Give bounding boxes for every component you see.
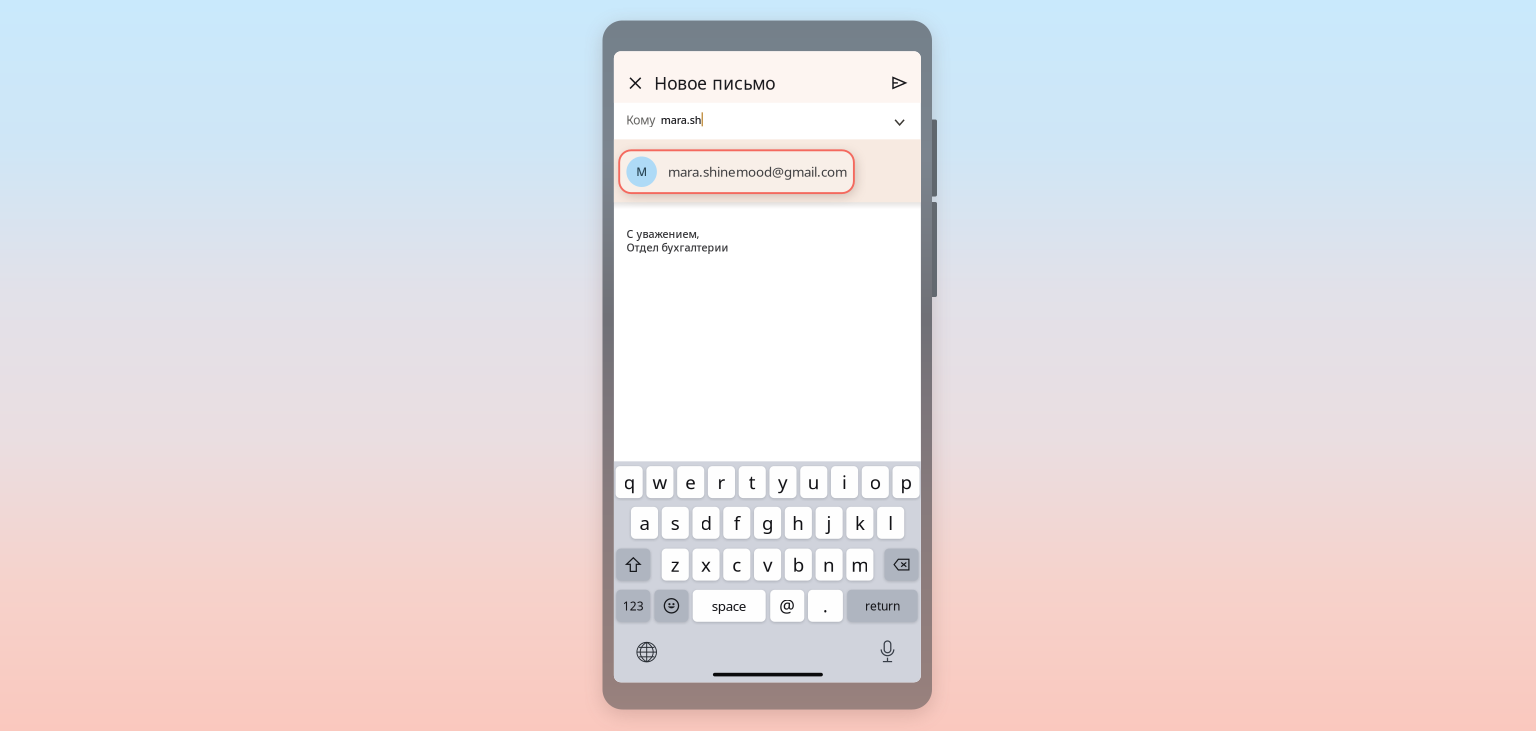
staticText: c bbox=[732, 552, 741, 577]
button[interactable]: b bbox=[785, 549, 812, 581]
button[interactable]: n bbox=[815, 549, 843, 581]
button[interactable]: q bbox=[616, 466, 643, 498]
staticText: k bbox=[855, 510, 865, 535]
staticText: M bbox=[636, 164, 647, 180]
staticText: e bbox=[685, 470, 696, 494]
staticText: Отдел бухгалтерии bbox=[627, 240, 729, 254]
staticText: space bbox=[712, 597, 747, 615]
staticText: h bbox=[792, 510, 804, 535]
button[interactable]: Dictate bbox=[880, 640, 894, 663]
button[interactable]: return bbox=[847, 590, 918, 622]
button[interactable]: a bbox=[631, 507, 658, 539]
staticText: x bbox=[701, 552, 711, 577]
staticText: i bbox=[842, 470, 847, 494]
button[interactable]: l bbox=[877, 507, 904, 539]
staticText: 123 bbox=[623, 598, 644, 614]
staticText: w bbox=[652, 470, 667, 494]
staticText: d bbox=[700, 510, 711, 535]
button[interactable]: i bbox=[831, 466, 858, 498]
staticText: l bbox=[888, 510, 893, 535]
staticText: y bbox=[778, 470, 788, 494]
button[interactable]: m bbox=[846, 549, 873, 581]
staticText: Новое письмо bbox=[654, 72, 775, 95]
button[interactable]: u bbox=[800, 466, 827, 498]
button[interactable]: Send bbox=[892, 77, 906, 89]
button[interactable]: t bbox=[739, 466, 766, 498]
button[interactable]: y bbox=[769, 466, 797, 498]
button[interactable]: Emoji bbox=[654, 590, 688, 622]
staticText: mara.sh bbox=[661, 113, 702, 127]
button[interactable]: j bbox=[816, 507, 843, 539]
staticText: u bbox=[808, 470, 820, 494]
staticText: q bbox=[624, 470, 635, 494]
button[interactable]: e bbox=[677, 466, 704, 498]
button[interactable]: 123 bbox=[616, 590, 650, 622]
staticText: b bbox=[793, 552, 804, 577]
staticText: n bbox=[823, 552, 835, 577]
button[interactable]: d bbox=[692, 507, 720, 539]
button[interactable]: Show more recipients bbox=[894, 119, 905, 126]
button[interactable]: f bbox=[723, 507, 750, 539]
staticText: a bbox=[639, 510, 649, 535]
button[interactable]: x bbox=[692, 549, 720, 581]
button[interactable]: k bbox=[846, 507, 873, 539]
staticText: p bbox=[901, 470, 912, 494]
staticText: С уважением, bbox=[627, 227, 700, 241]
button[interactable]: z bbox=[662, 549, 689, 581]
button[interactable]: Shift bbox=[616, 549, 650, 581]
button[interactable]: Close bbox=[630, 78, 641, 88]
button[interactable]: s bbox=[662, 507, 689, 539]
staticText: m bbox=[851, 552, 868, 577]
button[interactable]: w bbox=[646, 466, 673, 498]
button[interactable]: p bbox=[892, 466, 920, 498]
staticText: f bbox=[734, 510, 740, 535]
button[interactable]: h bbox=[785, 507, 812, 539]
staticText: s bbox=[671, 510, 680, 535]
staticText: Кому bbox=[626, 112, 655, 128]
button[interactable]: g bbox=[754, 507, 781, 539]
button[interactable]: Delete bbox=[884, 549, 918, 581]
button[interactable]: Switch keyboard bbox=[636, 642, 657, 662]
staticText: z bbox=[671, 552, 680, 577]
staticText: . bbox=[823, 594, 828, 617]
button[interactable]: c bbox=[723, 549, 750, 581]
staticText: mara.shinemood@gmail.com bbox=[668, 163, 847, 180]
staticText: r bbox=[717, 470, 725, 494]
button[interactable]: . bbox=[808, 590, 843, 622]
staticText: t bbox=[749, 470, 756, 494]
staticText: @ bbox=[779, 594, 795, 617]
staticText: v bbox=[763, 552, 772, 577]
staticText: return bbox=[865, 598, 900, 614]
button[interactable]: @ bbox=[770, 590, 804, 622]
staticText: g bbox=[762, 510, 773, 535]
staticText: j bbox=[827, 510, 832, 535]
button[interactable]: r bbox=[708, 466, 735, 498]
button[interactable]: M bbox=[619, 150, 854, 193]
staticText: o bbox=[870, 470, 881, 494]
button[interactable]: v bbox=[754, 549, 781, 581]
button[interactable]: space bbox=[693, 590, 766, 622]
button[interactable]: o bbox=[862, 466, 889, 498]
